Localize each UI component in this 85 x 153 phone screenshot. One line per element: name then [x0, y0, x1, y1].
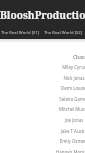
- staticText: Emily Osment: [44, 138, 85, 144]
- staticText: BlooshProductions: [0, 8, 85, 22]
- staticText: Demi Lovato: [44, 85, 85, 91]
- button[interactable]: Joe Jonas: [44, 117, 85, 127]
- staticText: Jake T Austin: [44, 128, 85, 134]
- staticText: Hannah Montana: [44, 149, 85, 153]
- button[interactable]: Miley Cyrus: [44, 64, 85, 74]
- button[interactable]: Hannah Montana: [44, 149, 85, 153]
- button[interactable]: Selena Gomez: [44, 96, 85, 106]
- button[interactable]: Mitchel Musso: [44, 106, 85, 116]
- staticText: Selena Gomez: [44, 96, 85, 102]
- staticText: Mitchel Musso: [44, 106, 85, 112]
- staticText: The Real World [S2]: [44, 30, 83, 36]
- button[interactable]: Emily Osment: [44, 138, 85, 148]
- staticText: Nick Jonas: [44, 75, 85, 81]
- button[interactable]: Demi Lovato: [44, 85, 85, 95]
- button[interactable]: Jake T Austin: [44, 128, 85, 138]
- button[interactable]: The Real World [S2]: [44, 30, 83, 36]
- staticText: Miley Cyrus: [44, 64, 85, 70]
- staticText: Characters: [73, 54, 85, 61]
- staticText: The Real World [S1]: [1, 30, 40, 36]
- button[interactable]: The Real World [S1]: [1, 30, 40, 36]
- staticText: Joe Jonas: [44, 117, 85, 123]
- button[interactable]: Nick Jonas: [44, 75, 85, 85]
